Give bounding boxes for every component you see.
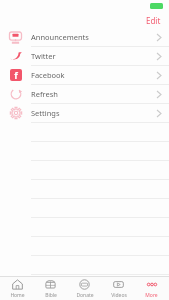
other: Donate — [79, 279, 90, 290]
button[interactable]: Edit — [138, 13, 169, 28]
staticText: Announcements — [31, 32, 157, 42]
staticText: Bible — [45, 292, 57, 299]
button[interactable]: Donate — [68, 277, 101, 300]
staticText: Edit — [146, 15, 161, 26]
staticText: Facebook — [31, 70, 157, 80]
staticText: Refresh — [31, 89, 157, 99]
staticText: f — [14, 69, 18, 81]
other: Videos — [113, 279, 124, 290]
button[interactable]: Refresh — [0, 85, 169, 104]
other: Home — [12, 279, 23, 290]
button[interactable]: Bible — [34, 277, 67, 300]
staticText: Twitter — [31, 51, 157, 61]
button[interactable]: Videos — [102, 277, 135, 300]
button[interactable]: Twitter — [0, 47, 169, 66]
staticText: More — [145, 292, 158, 299]
staticText: Home — [10, 292, 25, 299]
button[interactable]: Announcements — [0, 28, 169, 47]
button[interactable]: Home — [1, 277, 34, 300]
staticText: Videos — [111, 292, 127, 299]
button[interactable]: More — [135, 277, 168, 300]
other: More — [146, 279, 158, 290]
button[interactable]: Settings — [0, 104, 169, 123]
other: Bible — [45, 279, 56, 290]
button[interactable]: f — [0, 66, 169, 85]
staticText: Donate — [76, 292, 94, 299]
staticText: Settings — [31, 108, 157, 118]
